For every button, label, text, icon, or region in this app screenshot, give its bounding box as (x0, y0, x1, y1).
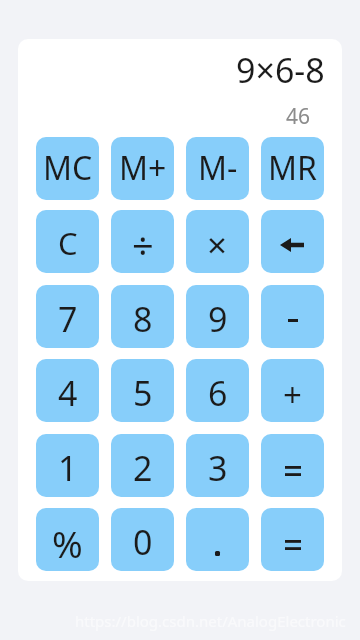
staticText: 2 (133, 445, 153, 491)
button[interactable]: 4 (36, 359, 99, 422)
staticText: 0 (133, 519, 153, 565)
staticText: 4 (58, 370, 78, 416)
button[interactable]: × (186, 210, 249, 273)
staticText: % (52, 518, 83, 568)
button[interactable]: M+ (111, 137, 174, 200)
button[interactable]: 7 (36, 285, 99, 348)
staticText: MC (43, 146, 93, 190)
staticText: + (283, 372, 302, 417)
button[interactable]: 5 (111, 359, 174, 422)
staticText: ÷ (132, 219, 154, 271)
staticText: × (207, 221, 228, 269)
staticText: 9 (208, 296, 228, 342)
button[interactable]: MR (261, 137, 324, 200)
button[interactable]: % (36, 508, 99, 571)
button[interactable]: 2 (111, 434, 174, 497)
staticText: 6 (208, 370, 228, 416)
button[interactable]: 9 (186, 285, 249, 348)
button[interactable]: + (261, 359, 324, 422)
button[interactable]: MC (36, 137, 99, 200)
staticText: 1 (58, 445, 78, 491)
staticText: 46 (286, 102, 311, 131)
staticText: 3 (208, 445, 228, 491)
staticText: 7 (58, 296, 78, 342)
button[interactable]: 6 (186, 359, 249, 422)
button[interactable]: 1 (36, 434, 99, 497)
button[interactable]: 3 (186, 434, 249, 497)
button[interactable]: 0 (111, 508, 174, 571)
button[interactable] (186, 508, 249, 571)
staticText: 5 (133, 370, 153, 416)
staticText: M+ (119, 146, 167, 190)
button[interactable] (261, 210, 324, 273)
staticText: C (58, 222, 78, 264)
staticText: M- (198, 146, 238, 190)
button[interactable]: M- (186, 137, 249, 200)
staticText: 9×6-8 (236, 47, 325, 93)
button[interactable] (261, 434, 324, 497)
button[interactable]: 8 (111, 285, 174, 348)
button[interactable]: C (36, 210, 99, 273)
staticText: MR (268, 146, 317, 190)
button[interactable]: ÷ (111, 210, 174, 273)
button[interactable] (261, 508, 324, 571)
staticText: 8 (133, 296, 153, 342)
button[interactable] (261, 285, 324, 348)
